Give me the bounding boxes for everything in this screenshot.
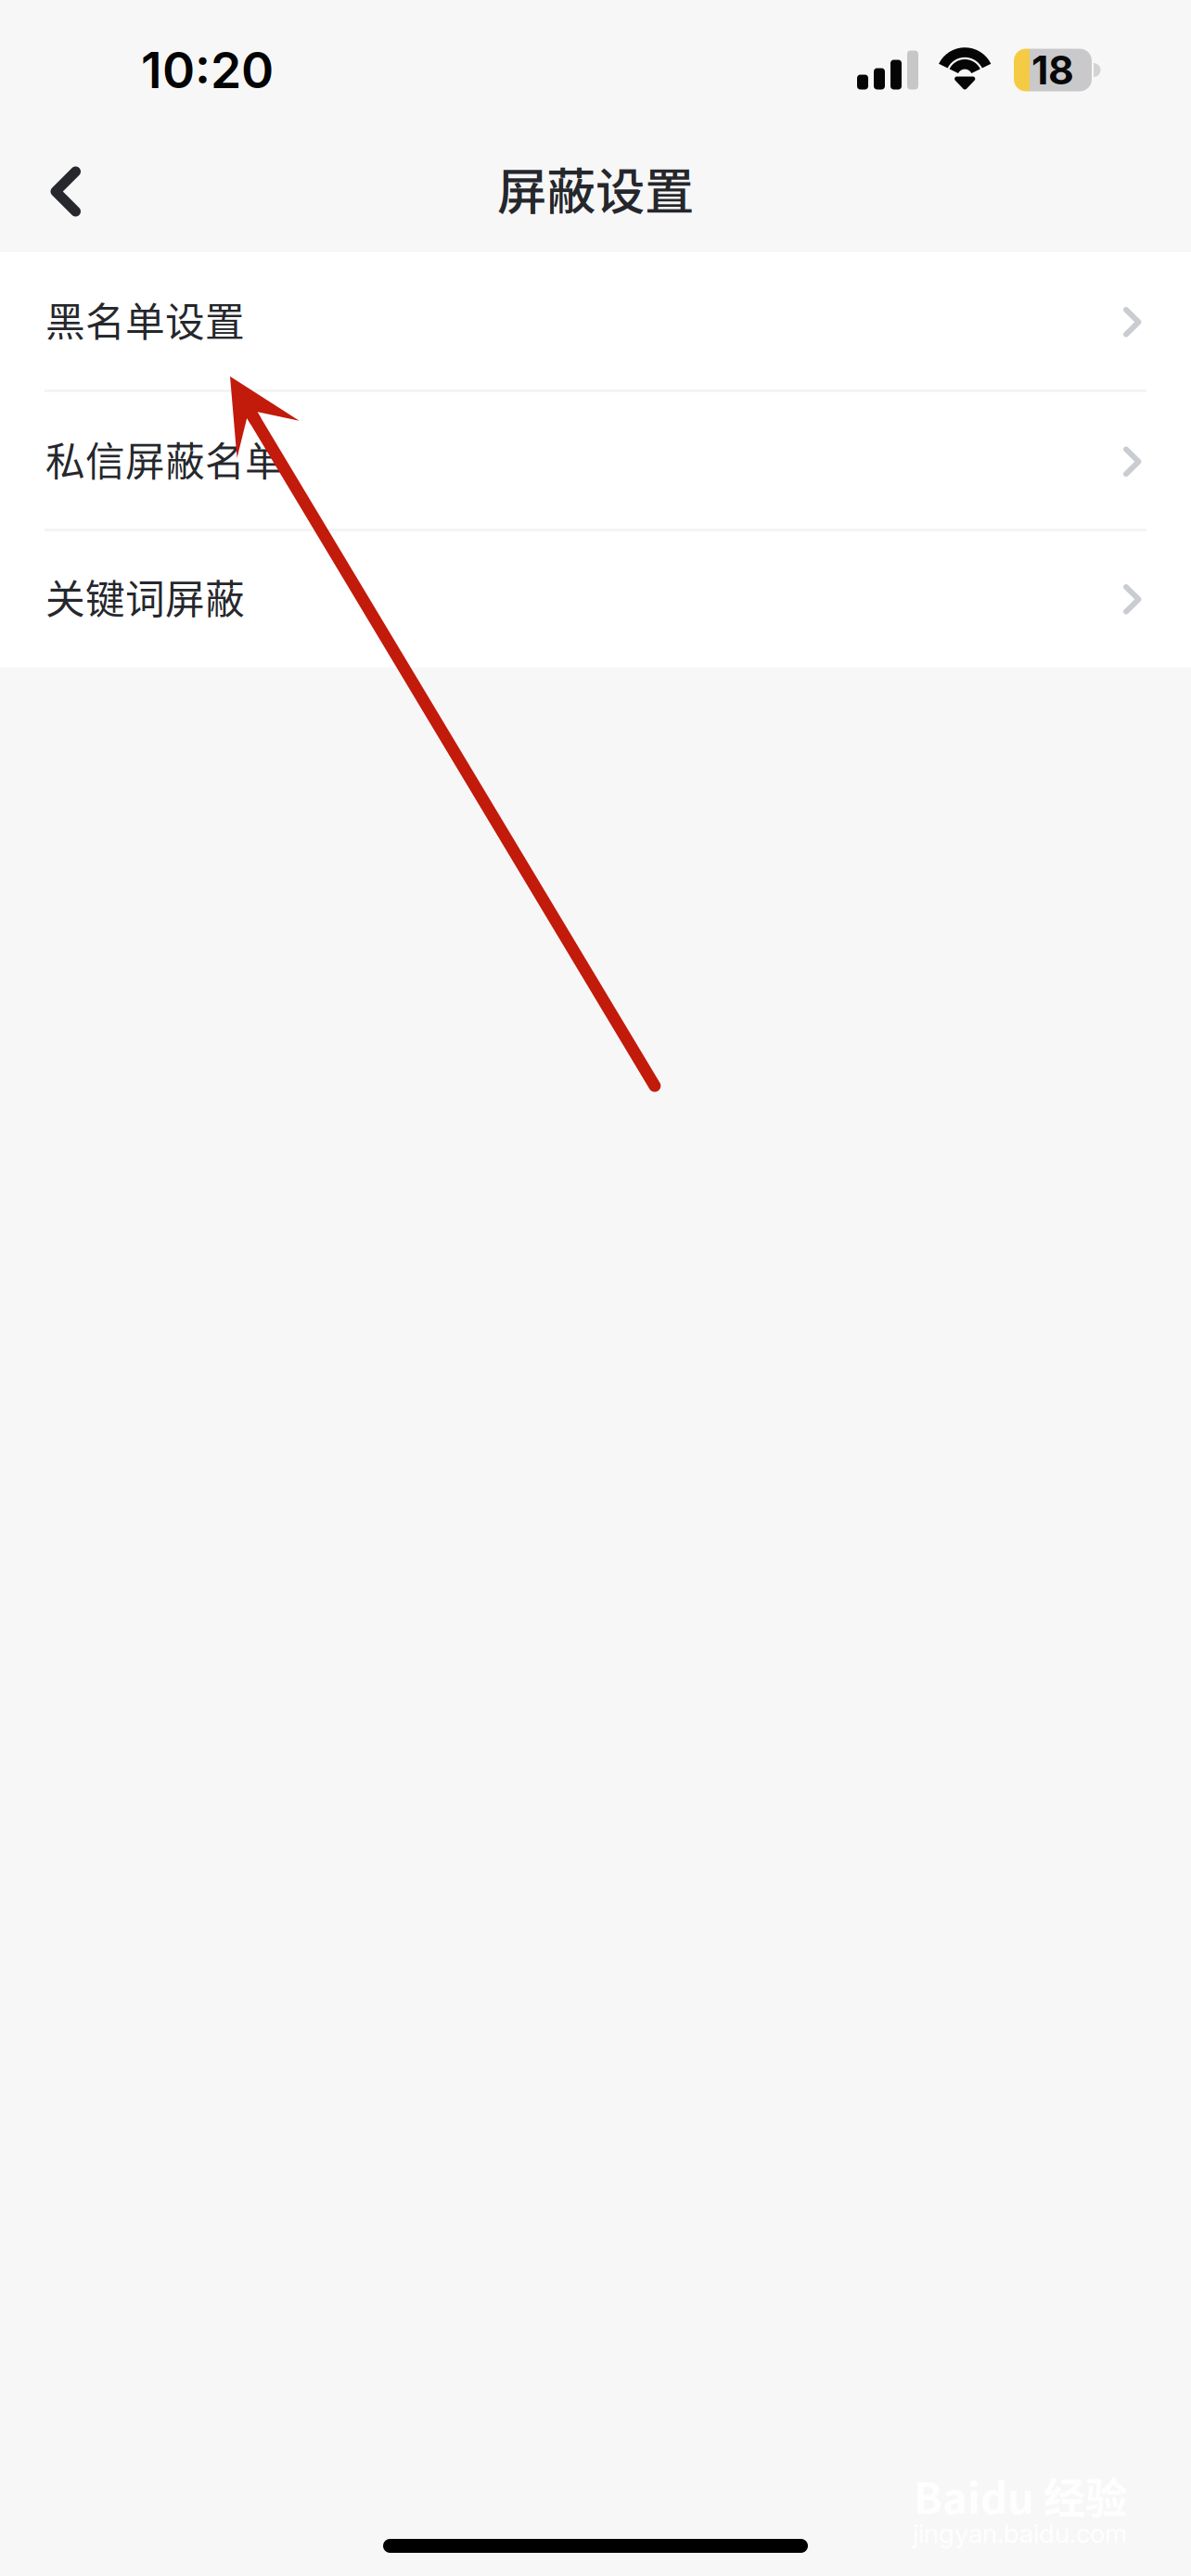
button[interactable]: 黑名单设置 bbox=[0, 252, 1191, 392]
staticText: 私信屏蔽名单 bbox=[45, 430, 285, 488]
button[interactable]: 私信屏蔽名单 bbox=[0, 392, 1191, 531]
button[interactable]: 关键词屏蔽 bbox=[0, 531, 1191, 668]
staticText: 黑名单设置 bbox=[45, 291, 245, 348]
staticText: 关键词屏蔽 bbox=[45, 568, 245, 625]
staticText: 屏蔽设置 bbox=[497, 152, 694, 224]
staticText: 18 bbox=[1031, 46, 1074, 94]
button[interactable]: Back bbox=[0, 124, 130, 252]
staticText: 10:20 bbox=[141, 40, 274, 100]
